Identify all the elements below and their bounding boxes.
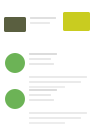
button[interactable]: Photo xyxy=(63,12,90,31)
button[interactable] xyxy=(0,53,90,88)
button[interactable] xyxy=(0,89,90,124)
button[interactable] xyxy=(0,17,90,32)
